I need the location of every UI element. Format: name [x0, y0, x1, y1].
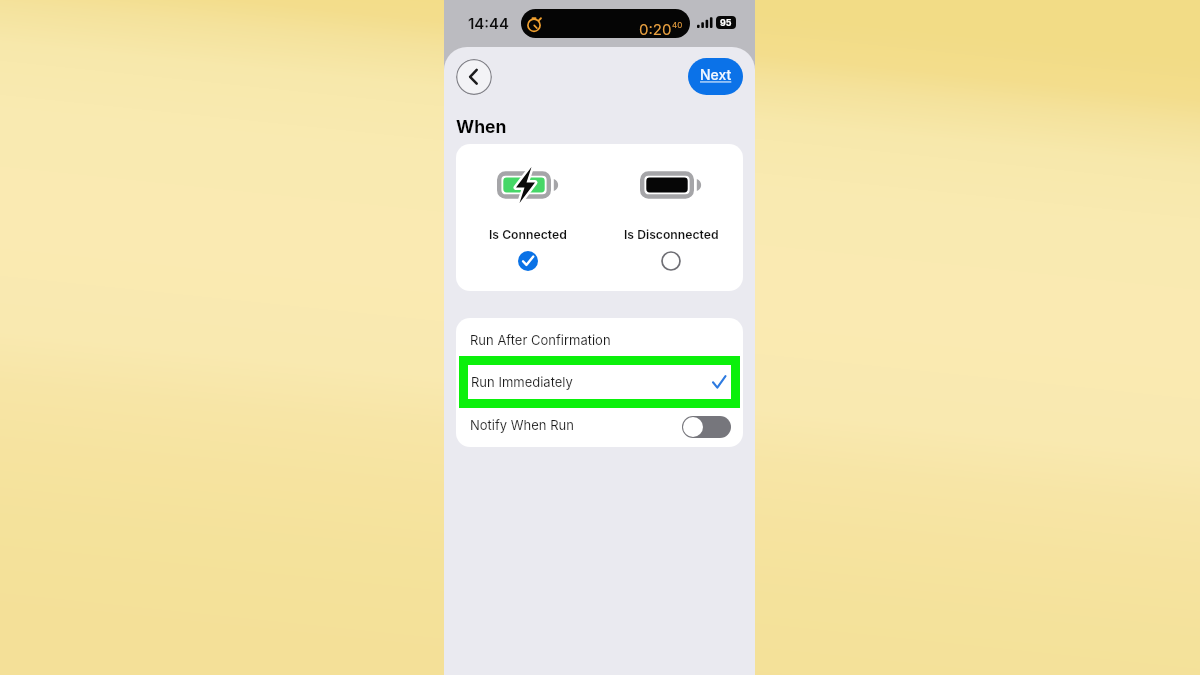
button[interactable]: Is Connected — [456, 144, 599, 291]
button[interactable]: Notify When Run — [682, 416, 731, 438]
staticText: Is Disconnected — [624, 227, 719, 242]
staticText: Notify When Run — [470, 417, 574, 433]
staticText: 40 — [672, 20, 683, 30]
button[interactable]: Notify When Run — [456, 408, 743, 447]
button[interactable]: Next — [688, 58, 743, 95]
button[interactable]: Back — [456, 59, 492, 95]
staticText: Next — [700, 66, 732, 83]
staticText: Run After Confirmation — [470, 332, 611, 348]
staticText: 0:20 — [639, 20, 672, 38]
button[interactable]: Is Disconnected — [599, 144, 743, 291]
staticText: Run Immediately — [471, 374, 573, 390]
button[interactable]: Run After Confirmation — [456, 318, 743, 356]
staticText: Is Connected — [489, 227, 567, 242]
button[interactable]: Run Immediately — [468, 365, 731, 399]
staticText: 95 — [720, 17, 732, 28]
staticText: When — [456, 116, 507, 137]
staticText: 14:44 — [468, 14, 510, 32]
